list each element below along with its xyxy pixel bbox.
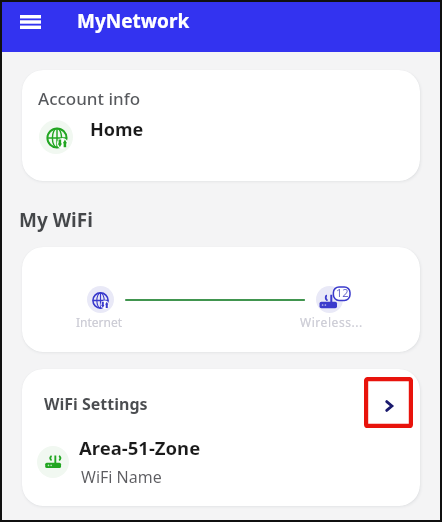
button[interactable]: Account info [22,70,420,181]
button[interactable]: WiFi Settings [22,369,420,506]
button[interactable]: Open navigation menu [2,2,50,52]
staticText: WiFi Name [81,466,162,488]
staticText: Account info [38,87,141,110]
staticText: Home [90,117,144,142]
staticText: Internet [76,314,123,330]
button[interactable]: Open WiFi settings [364,377,413,428]
staticText: MyNetwork [77,8,190,34]
button[interactable]: Internet [22,247,420,352]
staticText: Wireless... [300,314,363,330]
staticText: 12 [336,285,349,300]
staticText: My WiFi [19,207,93,233]
staticText: WiFi Settings [44,393,148,415]
staticText: Area-51-Zone [79,435,201,460]
